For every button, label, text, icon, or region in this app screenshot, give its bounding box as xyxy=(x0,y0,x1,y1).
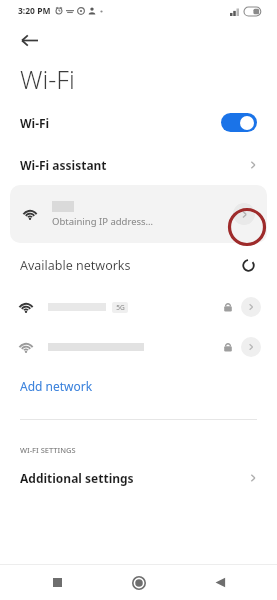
staticText: Wi-Fi assistant xyxy=(20,157,107,173)
staticText: 5G xyxy=(116,303,125,312)
staticText: 3:20 PM xyxy=(18,5,51,17)
button[interactable]: Wi-Fi xyxy=(0,100,277,145)
staticText: Additional settings xyxy=(20,470,134,486)
button[interactable]: Wi-Fi assistant xyxy=(0,145,277,185)
button[interactable]: Recents xyxy=(0,565,93,600)
other: Wi-Fi toggle on xyxy=(221,113,257,132)
button[interactable]: Network details xyxy=(0,327,277,367)
button[interactable]: Scan xyxy=(237,254,259,276)
staticText: WI-FI SETTINGS xyxy=(20,445,76,455)
button[interactable]: 5G xyxy=(0,287,277,327)
button[interactable]: Network details xyxy=(241,297,261,317)
button[interactable]: Back xyxy=(185,565,277,600)
staticText: Wi-Fi xyxy=(20,115,50,131)
button[interactable]: Network details xyxy=(233,203,255,225)
staticText: Add network xyxy=(20,378,93,394)
staticText: Wi-Fi xyxy=(20,62,75,96)
button[interactable]: Home xyxy=(93,565,185,600)
button[interactable]: Network details xyxy=(241,337,261,357)
staticText: Obtaining IP address… xyxy=(52,215,154,228)
button[interactable]: Obtaining IP address… xyxy=(10,185,267,243)
button[interactable]: Add network xyxy=(0,367,277,405)
staticText: Available networks xyxy=(20,257,131,274)
button[interactable]: Back xyxy=(14,25,44,55)
button[interactable]: Additional settings xyxy=(0,460,277,496)
